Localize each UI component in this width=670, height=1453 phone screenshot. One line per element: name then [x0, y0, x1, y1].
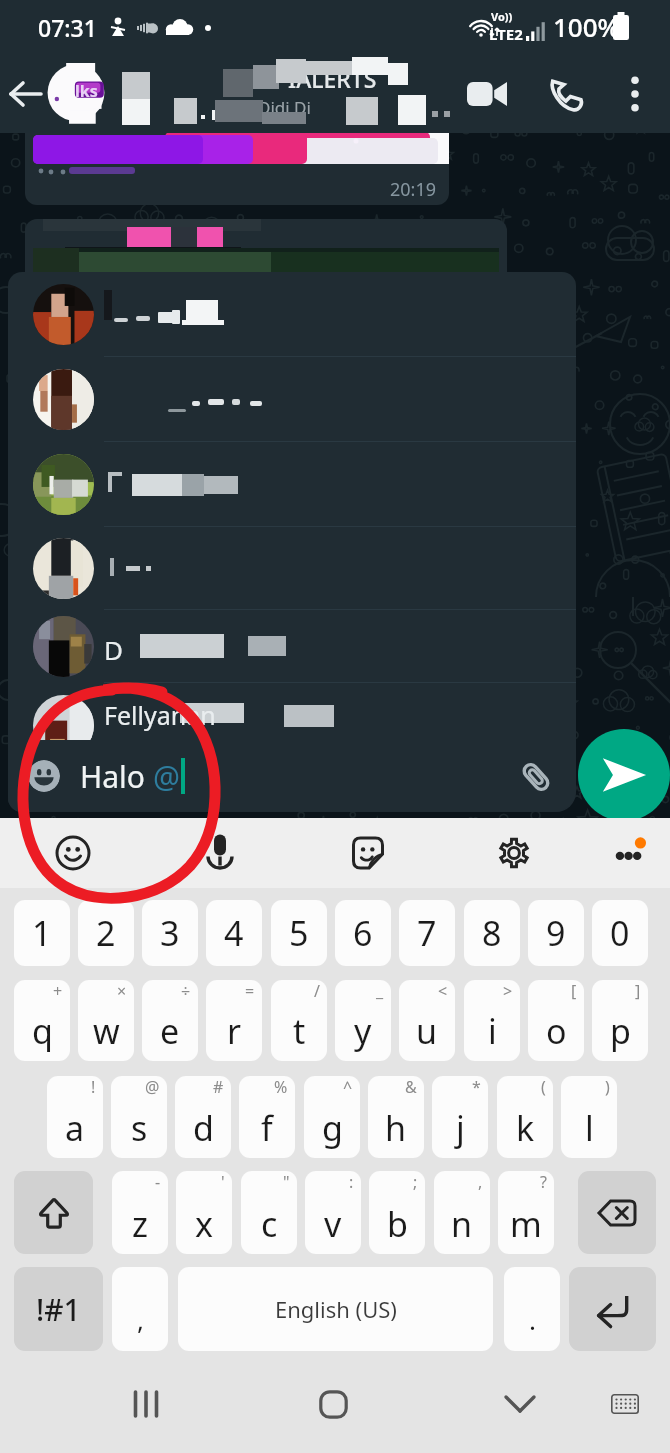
button[interactable]: lks — [47, 63, 105, 125]
staticText: o — [546, 1008, 567, 1054]
staticText: c — [261, 1201, 278, 1247]
staticText: m — [510, 1201, 542, 1247]
button[interactable]: Enter — [569, 1267, 656, 1351]
staticText: + — [53, 980, 63, 1002]
button[interactable]: Shift — [14, 1171, 93, 1254]
button[interactable]: 9 — [528, 900, 584, 966]
staticText: " — [283, 1171, 290, 1193]
button[interactable]: More options — [604, 55, 666, 133]
staticText: j — [456, 1105, 465, 1151]
staticText: 6 — [353, 910, 373, 956]
button[interactable]: 8 — [464, 900, 520, 966]
staticText: @ — [153, 756, 180, 797]
button[interactable]: ^ — [304, 1076, 360, 1158]
button[interactable]: + — [14, 980, 70, 1061]
button[interactable]: 1 — [14, 900, 70, 966]
button[interactable]: : — [305, 1171, 361, 1254]
staticText: LTE2 — [489, 24, 523, 44]
button[interactable]: > — [464, 980, 520, 1061]
staticText: ! — [91, 1076, 96, 1098]
staticText: ÷ — [181, 980, 191, 1002]
staticText: * — [472, 1076, 481, 1098]
button[interactable]: !#1 — [14, 1267, 103, 1351]
button[interactable]: ( — [497, 1076, 553, 1158]
staticText: % — [274, 1076, 288, 1098]
staticText: w — [93, 1008, 120, 1054]
staticText: ] — [635, 980, 641, 1002]
button[interactable]: 7 — [399, 900, 455, 966]
button[interactable] — [8, 357, 576, 441]
button[interactable]: / — [271, 980, 327, 1061]
staticText: / — [314, 980, 320, 1002]
button[interactable]: [ — [528, 980, 584, 1061]
staticText: 5 — [289, 910, 309, 956]
button[interactable]: . — [504, 1267, 560, 1351]
button[interactable]: Recents — [112, 1377, 180, 1431]
button[interactable]: × — [78, 980, 134, 1061]
staticText: ' — [221, 1171, 225, 1193]
button[interactable]: More — [604, 818, 656, 888]
button[interactable]: Attach — [513, 754, 559, 800]
button[interactable]: , — [112, 1267, 168, 1351]
staticText: , — [137, 1302, 144, 1337]
button[interactable]: Home — [299, 1377, 367, 1431]
button[interactable]: Backspace — [578, 1171, 656, 1254]
button[interactable]: Keyboard — [592, 1377, 658, 1431]
button[interactable]: 3 — [142, 900, 198, 966]
staticText: q — [32, 1008, 53, 1054]
button[interactable]: Send — [578, 729, 670, 821]
button[interactable]: Hide keyboard — [486, 1377, 554, 1431]
button[interactable]: ] — [592, 980, 648, 1061]
button[interactable]: 2 — [78, 900, 134, 966]
button[interactable]: ! — [47, 1076, 103, 1158]
button[interactable]: & — [368, 1076, 424, 1158]
button[interactable]: Voice input — [194, 818, 246, 888]
button[interactable]: Emoji — [28, 760, 60, 792]
staticText: > — [503, 980, 513, 1002]
button[interactable]: ' — [176, 1171, 232, 1254]
button[interactable]: Stickers — [342, 818, 394, 888]
staticText: u — [416, 1008, 438, 1054]
staticText: Fellyanan — [104, 698, 216, 732]
button[interactable] — [8, 442, 576, 526]
button[interactable]: 0 — [592, 900, 648, 966]
staticText: ( — [541, 1076, 546, 1098]
staticText: lks — [75, 80, 98, 102]
button[interactable]: = — [206, 980, 262, 1061]
button[interactable]: @ — [111, 1076, 167, 1158]
button[interactable]: " — [241, 1171, 297, 1254]
staticText: l — [585, 1105, 594, 1151]
staticText: ) — [605, 1076, 610, 1098]
button[interactable]: , — [434, 1171, 490, 1254]
staticText: 3 — [160, 910, 180, 956]
staticText: d — [193, 1105, 214, 1151]
button[interactable]: ) — [561, 1076, 617, 1158]
button[interactable]: D — [8, 610, 576, 682]
button[interactable]: Emoji — [8, 740, 576, 812]
button[interactable]: Emoji — [47, 818, 99, 888]
button[interactable]: < — [399, 980, 455, 1061]
button[interactable]: ÷ — [142, 980, 198, 1061]
button[interactable]: Fellyanan — [8, 683, 576, 767]
button[interactable]: % — [239, 1076, 295, 1158]
staticText: - — [155, 1171, 161, 1193]
staticText: D — [104, 632, 123, 667]
button[interactable] — [8, 527, 576, 609]
button[interactable]: # — [175, 1076, 231, 1158]
staticText: Didi Di — [258, 96, 311, 119]
button[interactable]: * — [432, 1076, 488, 1158]
button[interactable]: 4 — [206, 900, 262, 966]
button[interactable]: Voice call — [530, 55, 602, 133]
button[interactable]: 5 — [271, 900, 327, 966]
button[interactable] — [8, 272, 576, 356]
button[interactable]: ; — [369, 1171, 425, 1254]
button[interactable]: Video call — [449, 55, 525, 133]
staticText: n — [451, 1201, 473, 1247]
button[interactable]: Settings — [488, 818, 540, 888]
button[interactable]: ? — [498, 1171, 554, 1254]
button[interactable]: Back — [0, 55, 52, 133]
button[interactable]: _ — [335, 980, 391, 1061]
button[interactable]: English (US) — [178, 1267, 493, 1351]
button[interactable]: - — [112, 1171, 168, 1254]
button[interactable]: 6 — [335, 900, 391, 966]
